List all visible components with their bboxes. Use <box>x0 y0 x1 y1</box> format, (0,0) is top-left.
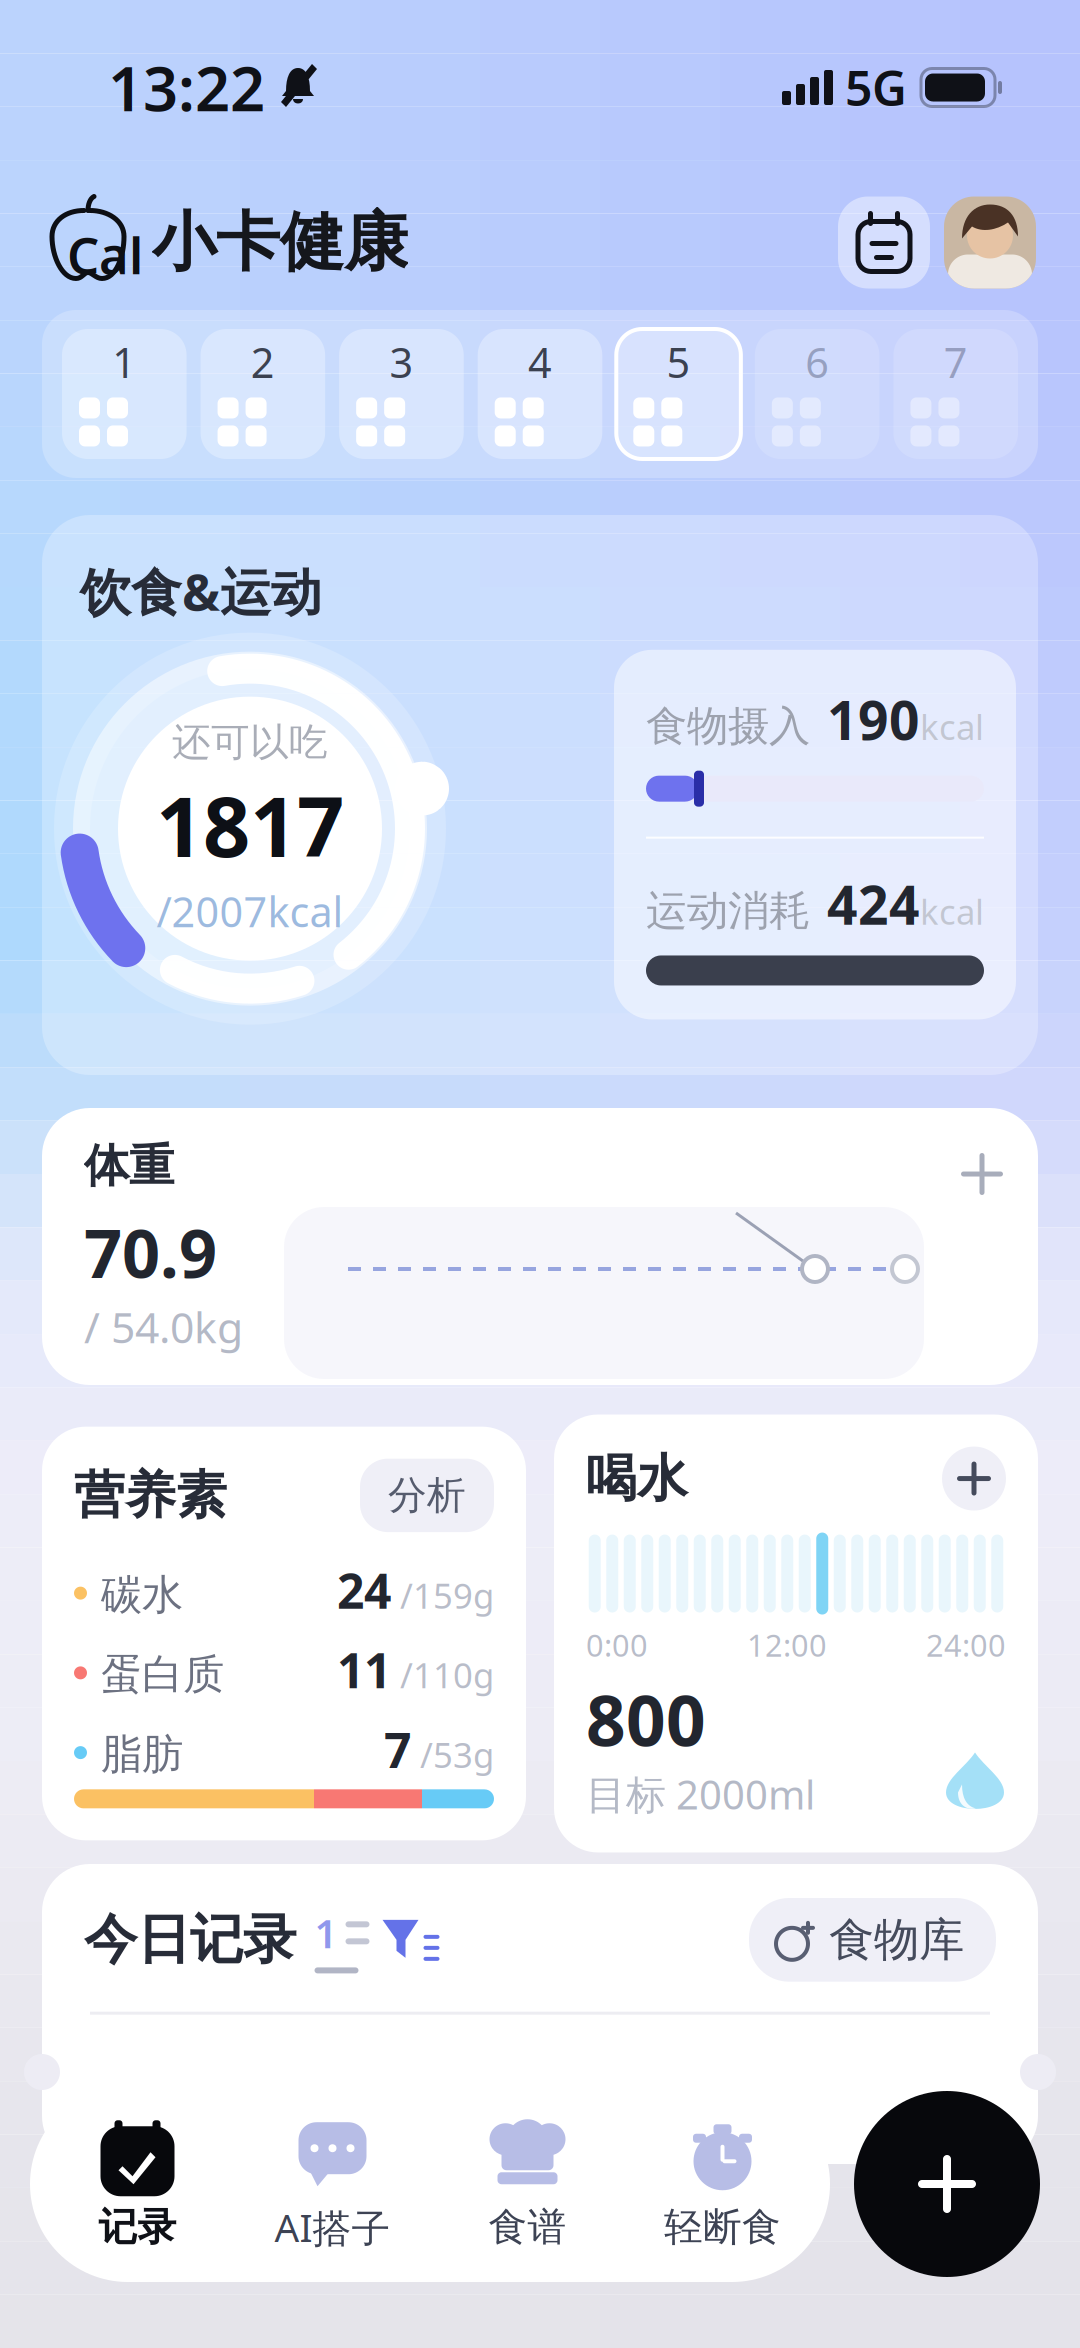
staticText: 5 <box>667 335 691 389</box>
button[interactable]: 7 <box>893 329 1018 459</box>
staticText: 800 <box>586 1673 706 1765</box>
staticText: 分析 <box>388 1472 466 1519</box>
staticText: 运动消耗 <box>646 886 810 936</box>
button[interactable]: 3 <box>339 329 464 459</box>
staticText: 424 <box>827 869 920 939</box>
staticText: /110g <box>391 1652 494 1698</box>
button[interactable]: 1 <box>62 329 187 459</box>
staticText: 小卡健康 <box>152 203 408 282</box>
staticText: 营养素 <box>74 1464 227 1526</box>
staticText: 12:00 <box>747 1624 827 1665</box>
staticText: 还可以吃 <box>172 719 328 766</box>
staticText: AI搭子 <box>274 2201 390 2253</box>
staticText: 70.9 <box>84 1208 217 1296</box>
staticText: 3 <box>389 335 413 389</box>
staticText: /2007kcal <box>156 884 343 939</box>
staticText: kcal <box>920 703 984 749</box>
staticText: 轻断食 <box>664 2203 781 2251</box>
staticText: 7 <box>944 335 968 389</box>
button[interactable]: 2 <box>201 329 325 459</box>
staticText: Cal <box>67 221 143 288</box>
button[interactable]: Add water <box>942 1446 1006 1510</box>
staticText: 记录 <box>98 2203 176 2251</box>
button[interactable]: AI搭子 <box>235 2115 430 2253</box>
staticText: 食物库 <box>829 1912 964 1968</box>
staticText: 食物摄入 <box>646 701 810 752</box>
staticText: 体重 <box>84 1138 174 1194</box>
button[interactable]: 轻断食 <box>625 2117 820 2251</box>
staticText: 24 <box>337 1558 391 1622</box>
staticText: 5G <box>845 56 907 119</box>
button[interactable]: 6 <box>755 329 879 459</box>
button[interactable]: Profile <box>930 196 1036 288</box>
staticText: 11 <box>337 1638 391 1702</box>
button[interactable]: 记录 <box>40 2117 235 2251</box>
staticText: /159g <box>391 1572 494 1618</box>
staticText: 0:00 <box>586 1624 648 1665</box>
staticText: 食谱 <box>488 2203 566 2251</box>
staticText: 碳水 <box>101 1569 183 1620</box>
staticText: 1 <box>112 335 136 389</box>
staticText: 1 <box>314 1906 337 1959</box>
staticText: 蛋白质 <box>101 1649 224 1700</box>
button[interactable]: 食谱 <box>430 2117 625 2251</box>
staticText: 脂肪 <box>101 1729 183 1780</box>
staticText: kcal <box>920 888 984 934</box>
button[interactable]: 分析 <box>360 1459 494 1532</box>
staticText: 喝水 <box>586 1447 688 1510</box>
staticText: 24:00 <box>926 1624 1006 1665</box>
staticText: 6 <box>805 335 829 389</box>
staticText: 4 <box>528 335 552 389</box>
staticText: 7 <box>384 1718 411 1781</box>
staticText: 2 <box>251 335 275 389</box>
button[interactable]: Add weight <box>946 1138 1018 1210</box>
staticText: 今日记录 <box>84 1907 296 1973</box>
staticText: 13:22 <box>108 47 265 128</box>
button[interactable]: 食物库 <box>749 1898 996 1982</box>
button[interactable]: 4 <box>478 329 602 459</box>
staticText: 目标 2000ml <box>586 1767 815 1820</box>
staticText: 1817 <box>156 770 344 880</box>
staticText: 饮食&运动 <box>80 557 322 625</box>
button[interactable]: 5 <box>616 329 741 459</box>
staticText: 190 <box>827 684 920 755</box>
staticText: / 54.0kg <box>84 1298 243 1355</box>
button[interactable]: Add entry <box>854 2091 1040 2277</box>
staticText: /53g <box>411 1732 494 1778</box>
button[interactable]: Journal <box>838 196 930 288</box>
